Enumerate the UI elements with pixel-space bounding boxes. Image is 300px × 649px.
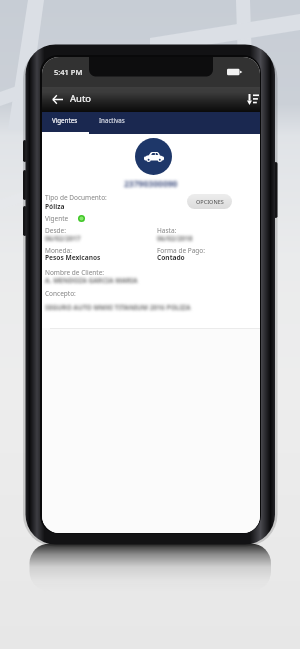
staticText: Póliza: [45, 202, 65, 211]
button[interactable]: Sort: [242, 87, 260, 112]
staticText: Concepto:: [45, 289, 76, 298]
staticText: Hasta:: [157, 226, 177, 235]
button[interactable]: [42, 112, 89, 134]
staticText: Desde:: [45, 226, 66, 235]
staticText: Moneda:: [45, 246, 72, 255]
staticText: OPCIONES: [196, 198, 224, 205]
staticText: 5:41 PM: [54, 67, 83, 77]
staticText: 23790300090: [124, 178, 178, 190]
staticText: Forma de Pago:: [157, 246, 206, 255]
staticText: Auto: [70, 92, 92, 105]
button[interactable]: [90, 112, 140, 134]
staticText: Pesos Mexicanos: [45, 253, 101, 262]
staticText: Inactivas: [99, 116, 125, 124]
staticText: Vigentes: [52, 116, 78, 124]
staticText: 06/02/2018: [157, 234, 193, 243]
staticText: A. MENDOZA GARCIA MARIA: [45, 276, 138, 285]
staticText: SEGURO AUTO MMXI TITANIUM 2016 POLIZA: [45, 303, 191, 312]
staticText: 06/02/2017: [45, 234, 81, 243]
staticText: Tipo de Documento:: [45, 193, 107, 202]
button[interactable]: Back: [44, 87, 70, 112]
staticText: Contado: [157, 253, 185, 262]
staticText: Vigente: [45, 214, 69, 223]
staticText: Nombre de Cliente:: [45, 268, 105, 277]
button[interactable]: OPCIONES: [187, 194, 232, 209]
